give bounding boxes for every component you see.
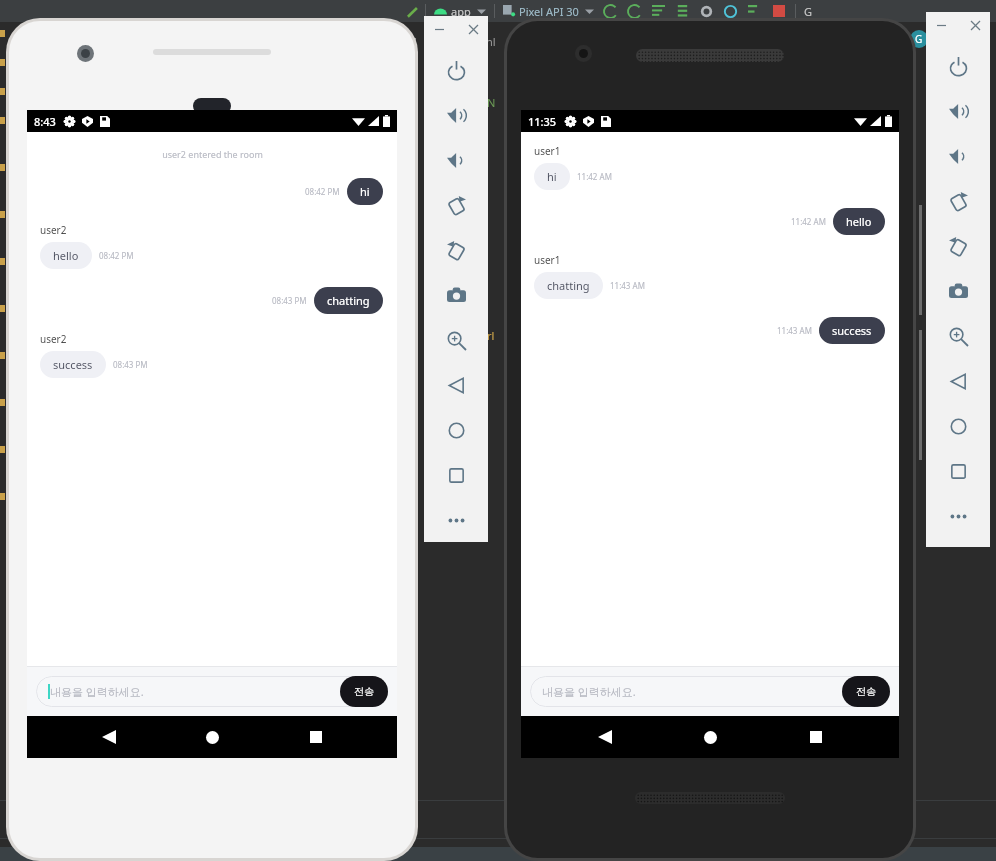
staticText: tW <box>402 34 417 49</box>
staticText: 내용을 입력하세요. <box>50 684 144 699</box>
button[interactable]: Back <box>424 363 488 408</box>
button[interactable]: Screenshot <box>424 273 488 318</box>
button[interactable]: Close <box>463 19 483 39</box>
staticText: user2 <box>40 223 67 237</box>
button[interactable]: Back <box>926 359 990 404</box>
staticText: nl <box>486 34 496 49</box>
button[interactable]: Minimize <box>429 19 449 39</box>
button[interactable]: Rotate right <box>424 228 488 273</box>
staticText: hello <box>846 214 872 229</box>
button[interactable]: success <box>40 351 106 378</box>
button[interactable]: Recents <box>294 716 338 758</box>
staticText: 11:42 AM <box>791 216 826 227</box>
button[interactable]: Minimize <box>931 15 951 35</box>
button[interactable]: Rotate right <box>926 224 990 269</box>
button[interactable]: 내용을 입력하세요. <box>530 676 890 707</box>
staticText: user2 entered the room <box>162 148 263 160</box>
staticText: 8:43 <box>34 114 56 129</box>
staticText: chatting <box>547 278 590 293</box>
button[interactable]: Volume down <box>926 134 990 179</box>
staticText: 08:43 PM <box>113 359 148 370</box>
button[interactable]: hi <box>347 178 383 205</box>
button[interactable]: Rotate left <box>424 183 488 228</box>
button[interactable]: Screenshot <box>926 269 990 314</box>
button[interactable]: Power <box>424 48 488 93</box>
staticText: hi <box>547 169 557 184</box>
button[interactable]: Volume up <box>926 89 990 134</box>
button[interactable]: Zoom <box>926 314 990 359</box>
staticText: 11:42 AM <box>577 171 612 182</box>
button[interactable]: Volume up <box>424 93 488 138</box>
staticText: user1 <box>534 253 561 267</box>
staticText: 08:42 PM <box>305 186 340 197</box>
staticText: G <box>804 4 813 19</box>
staticText: app <box>451 4 471 19</box>
staticText: 08:43 PM <box>272 295 307 306</box>
button[interactable]: success <box>819 317 885 344</box>
staticText: 11:43 AM <box>610 280 645 291</box>
button[interactable]: Home <box>424 408 488 453</box>
staticText: G <box>915 32 923 46</box>
staticText: N <box>487 95 496 110</box>
staticText: user1 <box>534 144 561 158</box>
button[interactable]: Back <box>87 716 131 758</box>
button[interactable]: Volume down <box>424 138 488 183</box>
button[interactable]: hello <box>833 208 885 235</box>
button[interactable]: Overview <box>424 453 488 498</box>
button[interactable]: hi <box>534 163 570 190</box>
staticText: success <box>53 357 93 372</box>
staticText: hello <box>53 248 79 263</box>
button[interactable]: Close <box>965 15 985 35</box>
staticText: rl <box>487 328 495 343</box>
staticText: 내용을 입력하세요. <box>542 684 636 699</box>
button[interactable]: chatting <box>314 287 383 314</box>
button[interactable]: Zoom <box>424 318 488 363</box>
button[interactable]: 전송 <box>340 676 388 707</box>
button[interactable]: Home <box>688 716 732 758</box>
staticText: chatting <box>327 293 370 308</box>
staticText: 11:43 AM <box>777 325 812 336</box>
button[interactable]: Recents <box>794 716 838 758</box>
button[interactable]: Home <box>926 404 990 449</box>
button[interactable]: Power <box>926 44 990 89</box>
staticText: 전송 <box>354 685 374 698</box>
button[interactable]: 내용을 입력하세요. <box>36 676 388 707</box>
staticText: Pixel API 30 <box>519 4 579 19</box>
staticText: 전송 <box>856 685 876 698</box>
staticText: 11:35 <box>528 114 557 129</box>
button[interactable]: Back <box>583 716 627 758</box>
button[interactable]: Home <box>190 716 234 758</box>
staticText: user2 <box>40 332 67 346</box>
button[interactable]: hello <box>40 242 92 269</box>
button[interactable]: Rotate left <box>926 179 990 224</box>
staticText: success <box>832 323 872 338</box>
button[interactable]: Overview <box>926 449 990 494</box>
button[interactable]: 전송 <box>842 676 890 707</box>
button[interactable]: More <box>926 494 990 539</box>
staticText: hi <box>360 184 370 199</box>
button[interactable]: More <box>424 498 488 542</box>
staticText: 08:42 PM <box>99 250 134 261</box>
button[interactable]: chatting <box>534 272 603 299</box>
